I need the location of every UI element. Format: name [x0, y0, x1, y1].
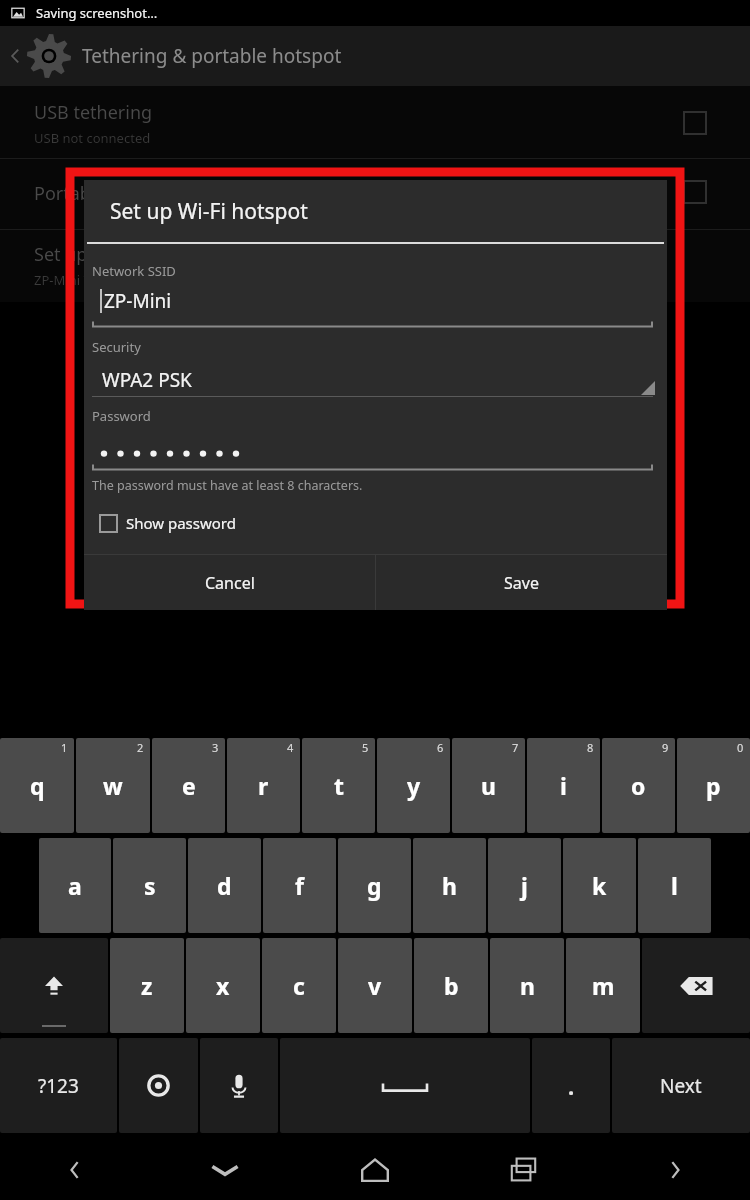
button[interactable]: f: [263, 838, 336, 933]
staticText: f: [295, 870, 304, 901]
staticText: y: [407, 770, 421, 801]
button[interactable]: ?123: [0, 1038, 117, 1133]
staticText: l: [671, 870, 678, 901]
button[interactable]: s: [113, 838, 186, 933]
staticText: Next: [660, 1073, 702, 1099]
staticText: v: [368, 970, 382, 1001]
staticText: r: [258, 770, 269, 801]
staticText: 7: [512, 740, 519, 755]
button[interactable]: USB tethering: [0, 86, 750, 158]
button[interactable]: 4: [227, 738, 300, 833]
button[interactable]: 9: [602, 738, 675, 833]
button[interactable]: Set up Wi-Fi hotspot: [0, 230, 750, 302]
staticText: Show password: [126, 513, 236, 533]
button[interactable]: Home: [300, 1140, 450, 1200]
staticText: Network SSID: [92, 262, 176, 280]
button[interactable]: 5: [302, 738, 375, 833]
staticText: a: [68, 870, 82, 901]
button[interactable]: a: [39, 838, 111, 933]
staticText: Tethering & portable hotspot: [82, 43, 342, 69]
staticText: USB not connected: [34, 129, 151, 147]
button[interactable]: Hide keyboard: [150, 1140, 300, 1200]
button[interactable]: Show password: [84, 506, 667, 540]
staticText: t: [334, 770, 344, 801]
button[interactable]: m: [566, 938, 640, 1033]
staticText: n: [520, 970, 535, 1001]
button[interactable]: 6: [377, 738, 450, 833]
staticText: ?123: [38, 1073, 79, 1099]
staticText: Security: [92, 338, 141, 356]
staticText: .: [568, 1071, 575, 1101]
button[interactable]: Voice input: [200, 1038, 278, 1133]
staticText: WPA2 PSK: [102, 367, 192, 393]
other: Navigate up: [6, 47, 24, 65]
button[interactable]: j: [488, 838, 561, 933]
button[interactable]: l: [638, 838, 711, 933]
button[interactable]: 2: [76, 738, 150, 833]
staticText: q: [30, 770, 45, 801]
button[interactable]: Menu right: [600, 1140, 750, 1200]
staticText: o: [631, 770, 646, 801]
button[interactable]: z: [110, 938, 184, 1033]
button[interactable]: [84, 435, 667, 465]
staticText: m: [592, 970, 615, 1001]
staticText: 2: [137, 740, 144, 755]
button[interactable]: Save: [376, 555, 667, 610]
button[interactable]: 8: [527, 738, 600, 833]
staticText: u: [481, 770, 496, 801]
button[interactable]: Shift: [0, 938, 108, 1033]
staticText: h: [442, 870, 457, 901]
button[interactable]: Next: [612, 1038, 750, 1133]
staticText: 9: [662, 740, 669, 755]
staticText: Password: [92, 407, 151, 425]
staticText: ZP-Mini WPA2 PSK portable Wi-Fi hotspot: [34, 271, 285, 289]
staticText: 6: [437, 740, 444, 755]
staticText: 1: [61, 740, 68, 755]
staticText: 3: [212, 740, 219, 755]
button[interactable]: Menu left: [0, 1140, 150, 1200]
button[interactable]: n: [490, 938, 564, 1033]
button[interactable]: 0: [677, 738, 750, 833]
button[interactable]: Delete: [642, 938, 750, 1033]
staticText: g: [367, 870, 382, 901]
staticText: Saving screenshot…: [36, 4, 158, 22]
staticText: USB tethering: [34, 100, 153, 125]
staticText: 5: [362, 740, 369, 755]
staticText: Portable Wi-Fi hotspot: [34, 181, 222, 206]
staticText: s: [144, 870, 156, 901]
staticText: e: [182, 770, 196, 801]
staticText: Cancel: [205, 572, 255, 594]
button[interactable]: .: [532, 1038, 610, 1133]
button[interactable]: v: [338, 938, 412, 1033]
button[interactable]: d: [188, 838, 261, 933]
button[interactable]: h: [413, 838, 486, 933]
button[interactable]: Emoji: [119, 1038, 198, 1133]
button[interactable]: b: [414, 938, 488, 1033]
button[interactable]: 1: [0, 738, 74, 833]
staticText: z: [141, 970, 153, 1001]
button[interactable]: 7: [452, 738, 525, 833]
button[interactable]: c: [262, 938, 336, 1033]
staticText: ZP-Mini: [104, 288, 172, 314]
button[interactable]: k: [563, 838, 636, 933]
staticText: i: [560, 770, 567, 801]
staticText: Set up Wi-Fi hotspot: [110, 197, 308, 226]
staticText: 0: [737, 740, 744, 755]
button[interactable]: Navigate up: [0, 26, 750, 86]
button[interactable]: Cancel: [84, 555, 375, 610]
staticText: d: [217, 870, 232, 901]
staticText: The password must have at least 8 charac…: [92, 477, 363, 494]
button[interactable]: Recent apps: [450, 1140, 600, 1200]
staticText: 8: [587, 740, 594, 755]
button[interactable]: WPA2 PSK: [84, 364, 667, 396]
button[interactable]: 3: [152, 738, 225, 833]
staticText: Set up Wi-Fi hotspot: [34, 242, 204, 267]
button[interactable]: ZP-Mini: [84, 288, 667, 322]
staticText: p: [706, 770, 721, 801]
staticText: b: [444, 970, 459, 1001]
button[interactable]: g: [338, 838, 411, 933]
button[interactable]: x: [186, 938, 260, 1033]
button[interactable]: Space: [280, 1038, 530, 1133]
button[interactable]: Portable Wi-Fi hotspot: [0, 159, 750, 229]
staticText: x: [216, 970, 230, 1001]
